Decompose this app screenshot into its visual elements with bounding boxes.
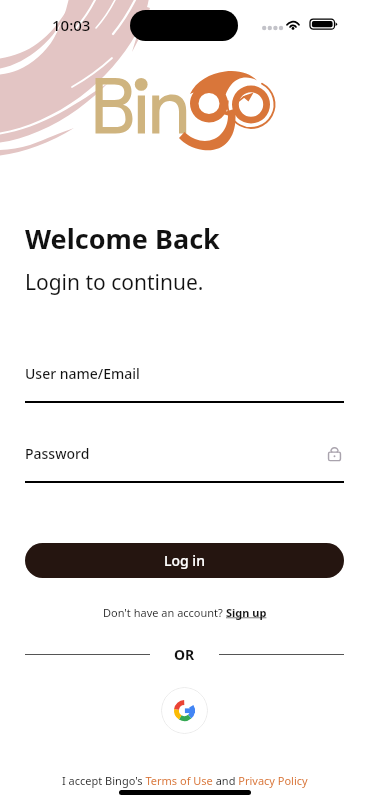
staticText: Welcome Back: [25, 220, 220, 257]
staticText: I accept Bingo's Terms of Use and Privac…: [62, 773, 308, 788]
staticText: OR: [174, 645, 195, 664]
staticText: Password: [25, 444, 90, 463]
staticText: Login to continue.: [25, 268, 204, 297]
staticText: Log in: [164, 551, 205, 570]
staticText: Don't have an account?: [103, 605, 226, 620]
staticText: User name/Email: [25, 364, 140, 383]
staticText: 10:03: [52, 15, 91, 35]
button[interactable]: Don't have an account?: [25, 605, 344, 620]
button[interactable]: Log in: [25, 543, 344, 578]
button[interactable]: Show password: [324, 443, 344, 463]
staticText: Sign up: [226, 605, 267, 620]
button[interactable]: Sign in with Google: [161, 687, 208, 734]
